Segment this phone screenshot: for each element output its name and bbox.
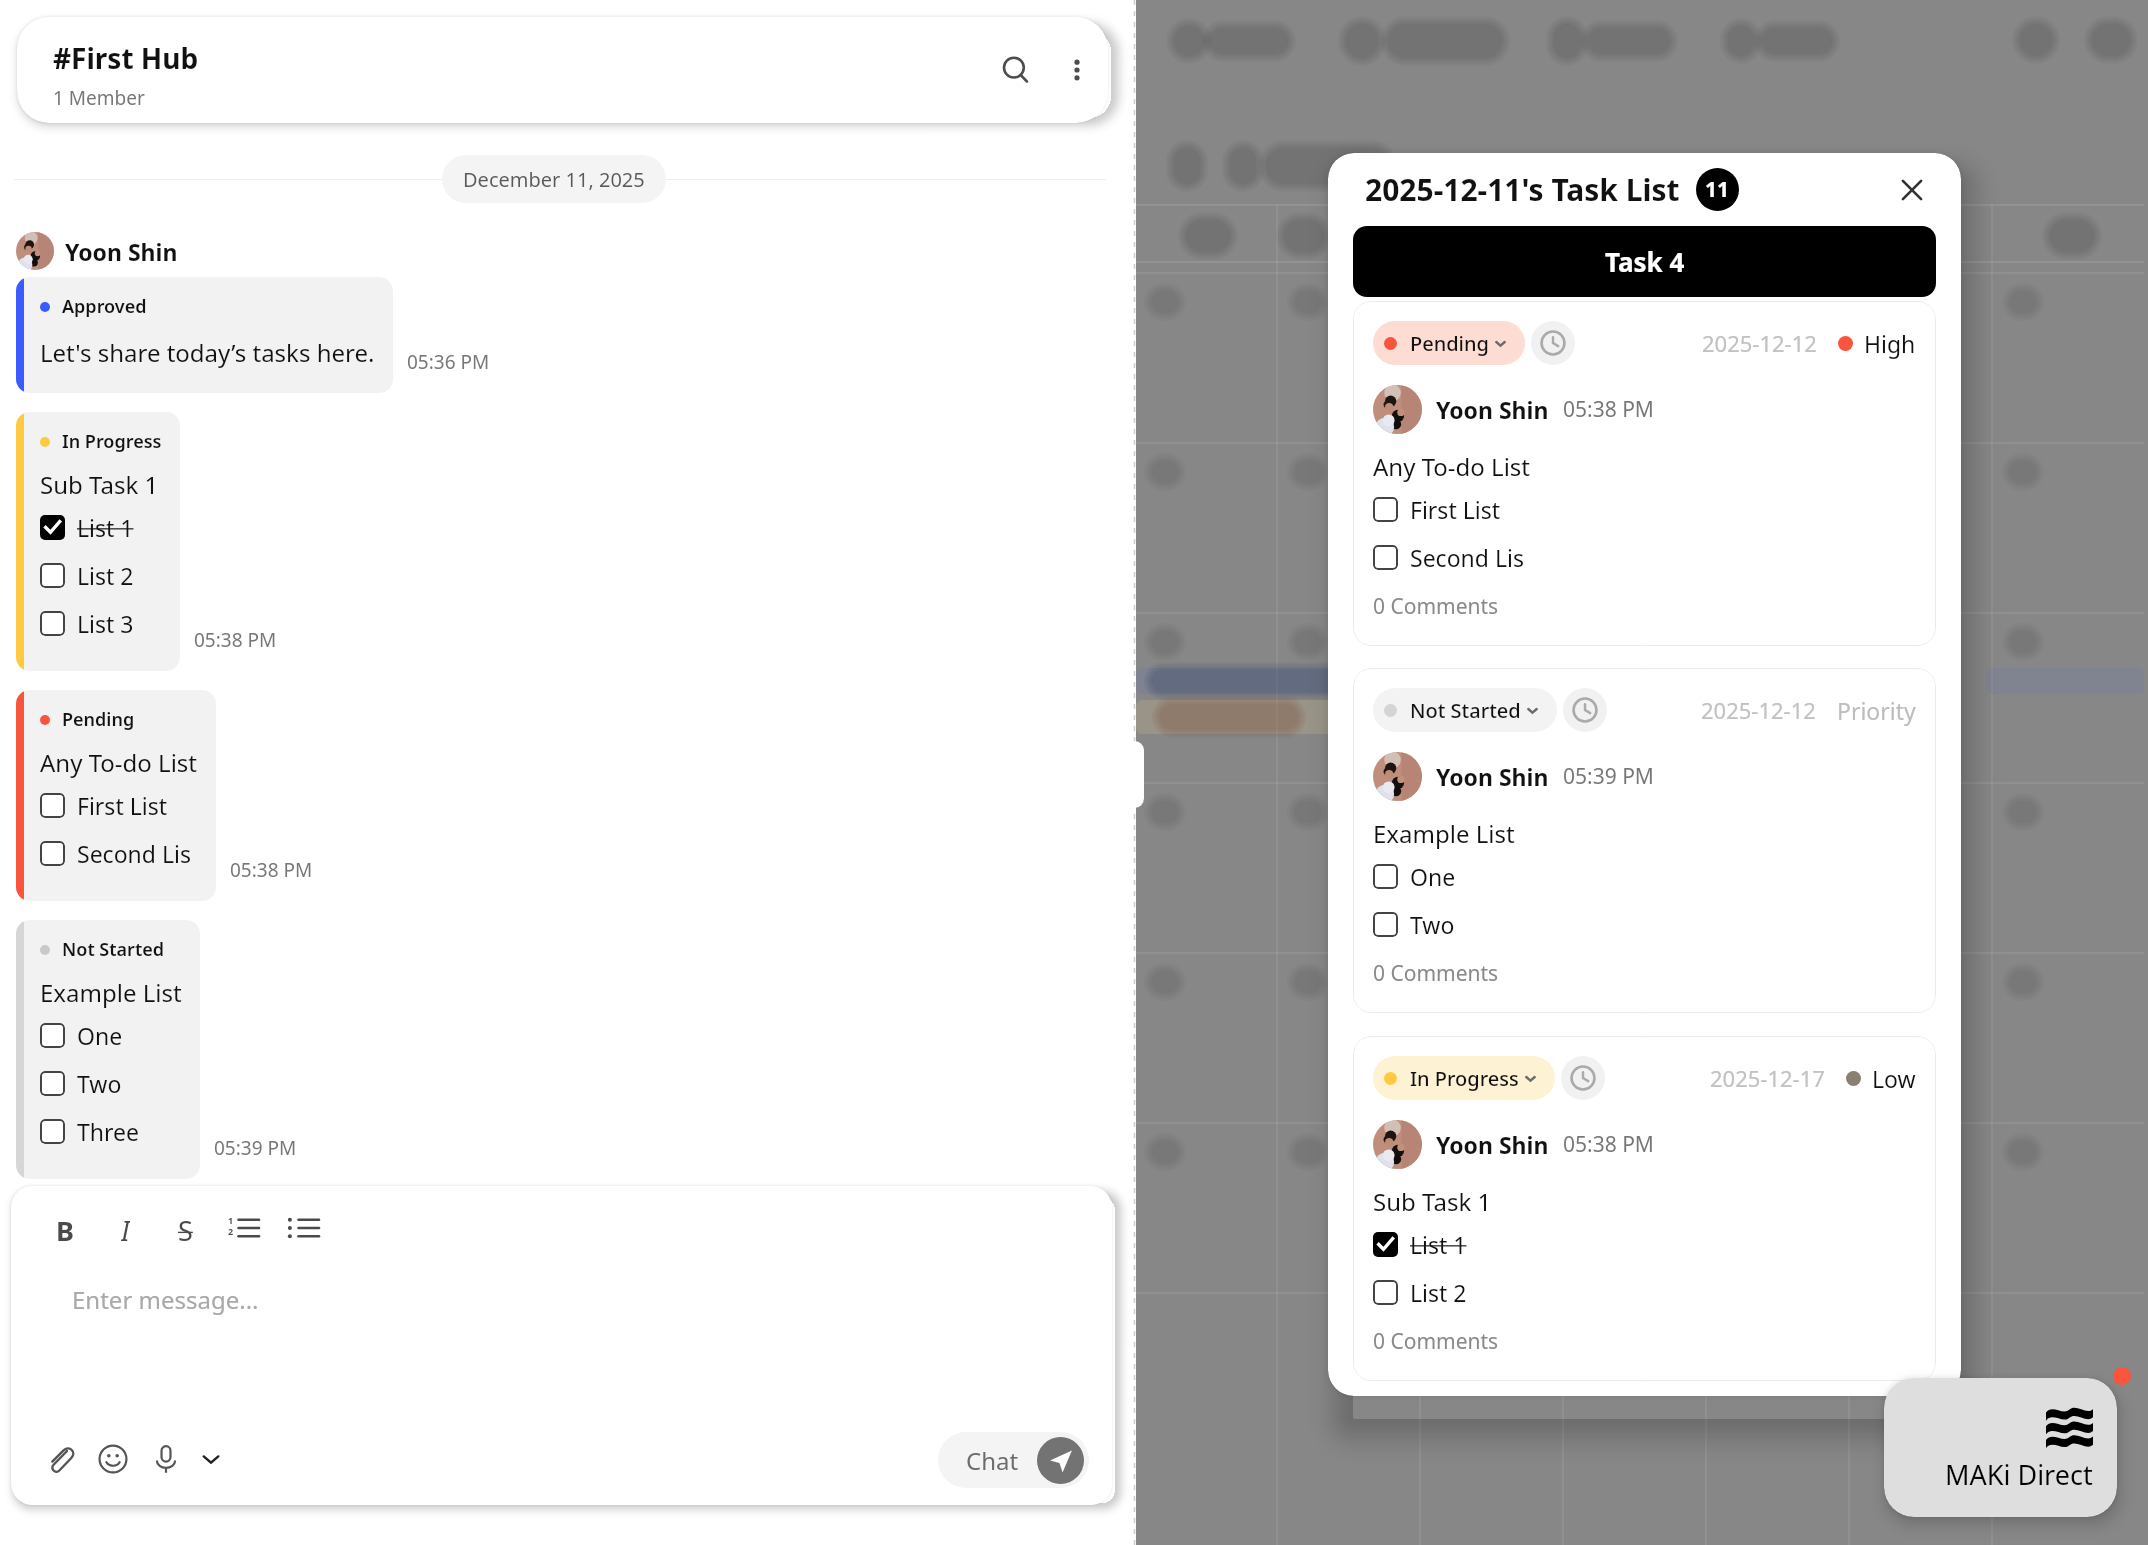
- button[interactable]: Task 4: [1353, 226, 1936, 297]
- button[interactable]: S: [169, 1212, 201, 1244]
- button[interactable]: Search: [993, 47, 1039, 93]
- button[interactable]: Pending: [1373, 321, 1525, 365]
- staticText: Yoon Shin: [65, 236, 178, 267]
- button[interactable]: Voice: [150, 1443, 182, 1475]
- staticText: List 3: [77, 608, 134, 639]
- staticText: 2: [228, 1225, 234, 1237]
- button[interactable]: December 11, 2025: [442, 155, 666, 203]
- staticText: Task 4: [1605, 244, 1685, 279]
- staticText: 05:39 PM: [214, 1135, 297, 1161]
- staticText: Pending: [62, 707, 135, 732]
- button[interactable]: In Progress: [1353, 1036, 1936, 1381]
- button[interactable]: Approved: [16, 277, 393, 393]
- button[interactable]: B: [49, 1212, 81, 1244]
- button[interactable]: Two: [40, 1059, 122, 1107]
- staticText: Let's share today’s tasks here.: [40, 336, 375, 369]
- staticText: 1 Member: [53, 85, 145, 111]
- button[interactable]: List 1: [40, 503, 134, 551]
- staticText: Example List: [40, 976, 182, 1009]
- button[interactable]: Chat: [938, 1432, 1089, 1488]
- button[interactable]: Second Lis: [1373, 533, 1524, 581]
- staticText: Two: [77, 1068, 122, 1099]
- button[interactable]: One: [40, 1011, 123, 1059]
- staticText: 2025-12-11's Task List: [1365, 169, 1680, 210]
- button[interactable]: Due time: [1561, 1056, 1605, 1100]
- button[interactable]: Close: [1891, 169, 1933, 211]
- button[interactable]: Attach: [44, 1443, 76, 1475]
- staticText: List 1: [1410, 1229, 1467, 1260]
- button[interactable]: Three: [40, 1107, 139, 1155]
- staticText: 05:38 PM: [194, 627, 277, 653]
- staticText: I: [121, 1212, 130, 1244]
- staticText: First List: [77, 790, 167, 821]
- staticText: Second Lis: [1410, 542, 1524, 573]
- staticText: 1: [228, 1214, 234, 1226]
- staticText: 05:38 PM: [1563, 395, 1654, 424]
- button[interactable]: First List: [1373, 485, 1500, 533]
- staticText: B: [56, 1212, 74, 1244]
- staticText: 2025-12-12: [1701, 695, 1816, 725]
- staticText: Two: [1410, 909, 1455, 940]
- staticText: 2025-12-17: [1710, 1063, 1825, 1093]
- staticText: 05:38 PM: [230, 857, 313, 883]
- button[interactable]: Numbered list: [227, 1212, 259, 1244]
- staticText: Approved: [62, 294, 147, 319]
- button[interactable]: Due time: [1531, 321, 1575, 365]
- staticText: Yoon Shin: [1436, 1129, 1549, 1160]
- staticText: 05:38 PM: [1563, 1130, 1654, 1159]
- button[interactable]: Second Lis: [40, 829, 191, 877]
- staticText: Sub Task 1: [40, 468, 159, 501]
- staticText: Sub Task 1: [1373, 1185, 1492, 1218]
- button[interactable]: Two: [1373, 900, 1455, 948]
- button[interactable]: More options: [1055, 48, 1099, 92]
- button[interactable]: MAKi Direct: [1884, 1378, 2117, 1517]
- staticText: Example List: [1373, 817, 1515, 850]
- staticText: In Progress: [1410, 1065, 1519, 1092]
- staticText: Any To-do List: [40, 746, 198, 779]
- staticText: Chat: [966, 1444, 1019, 1477]
- staticText: One: [1410, 861, 1456, 892]
- button[interactable]: List 2: [40, 551, 134, 599]
- staticText: List 1: [77, 512, 134, 543]
- staticText: In Progress: [62, 429, 162, 454]
- staticText: 0 Comments: [1373, 959, 1499, 988]
- staticText: High: [1864, 328, 1916, 359]
- button[interactable]: Emoji: [97, 1443, 129, 1475]
- staticText: One: [77, 1020, 123, 1051]
- button[interactable]: Pending: [1353, 301, 1936, 646]
- staticText: S: [178, 1212, 193, 1244]
- button[interactable]: #First Hub: [17, 17, 1108, 123]
- button[interactable]: List 1: [1373, 1220, 1467, 1268]
- staticText: First List: [1410, 494, 1500, 525]
- button[interactable]: I: [109, 1212, 141, 1244]
- button[interactable]: List 2: [1373, 1268, 1467, 1316]
- button[interactable]: List 3: [40, 599, 134, 647]
- staticText: December 11, 2025: [463, 166, 645, 193]
- staticText: 0 Comments: [1373, 592, 1499, 621]
- button[interactable]: Pending: [16, 690, 216, 901]
- staticText: Not Started: [1410, 697, 1521, 724]
- button[interactable]: One: [1373, 852, 1456, 900]
- button[interactable]: Not Started: [1373, 688, 1557, 732]
- button[interactable]: In Progress: [16, 412, 180, 671]
- staticText: Not Started: [62, 937, 165, 962]
- staticText: 11: [1705, 175, 1730, 204]
- staticText: Three: [77, 1116, 139, 1147]
- staticText: Enter message...: [72, 1283, 259, 1316]
- button[interactable]: First List: [40, 781, 167, 829]
- staticText: 05:36 PM: [407, 349, 490, 375]
- button[interactable]: Not Started: [16, 920, 200, 1179]
- button[interactable]: Bulleted list: [287, 1212, 319, 1244]
- button[interactable]: Resize panel: [1125, 741, 1144, 808]
- staticText: #First Hub: [53, 39, 199, 77]
- staticText: Second Lis: [77, 838, 191, 869]
- button[interactable]: Due time: [1563, 688, 1607, 732]
- staticText: List 2: [1410, 1277, 1467, 1308]
- button[interactable]: Not Started: [1353, 668, 1936, 1013]
- staticText: Any To-do List: [1373, 450, 1531, 483]
- button[interactable]: In Progress: [1373, 1056, 1555, 1100]
- button[interactable]: More options: [198, 1446, 224, 1472]
- staticText: Low: [1872, 1063, 1916, 1094]
- staticText: 0 Comments: [1373, 1327, 1499, 1356]
- staticText: List 2: [77, 560, 134, 591]
